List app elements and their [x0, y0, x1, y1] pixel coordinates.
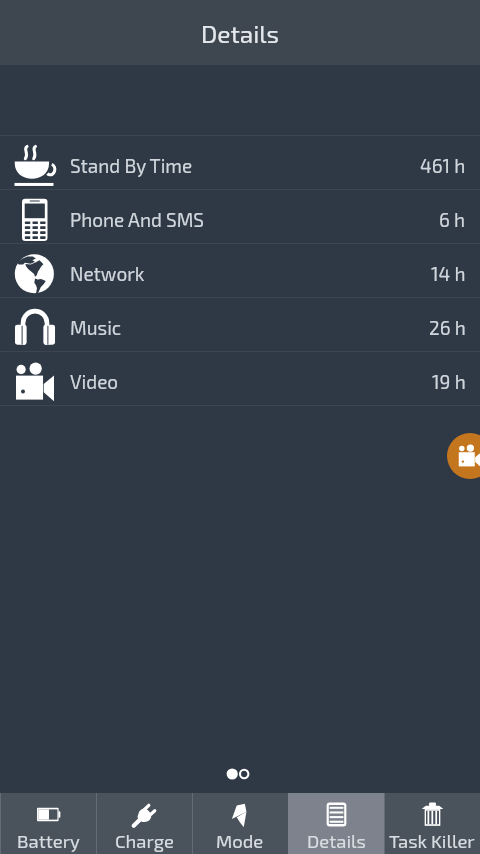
button[interactable]: Video recording: [447, 433, 480, 479]
staticText: 19 h: [432, 370, 466, 393]
button[interactable]: Task Killer: [384, 793, 480, 854]
staticText: Network: [70, 262, 145, 285]
staticText: 461 h: [420, 154, 466, 177]
button[interactable]: Music: [0, 298, 480, 351]
staticText: 26 h: [429, 316, 466, 339]
staticText: 14 h: [431, 262, 466, 285]
staticText: Stand By Time: [70, 154, 193, 177]
staticText: Music: [70, 316, 122, 339]
staticText: Video: [70, 370, 119, 393]
staticText: Battery: [17, 830, 80, 852]
staticText: Details: [307, 830, 366, 852]
staticText: Mode: [216, 830, 264, 852]
button[interactable]: Battery: [0, 793, 96, 854]
button[interactable]: Network: [0, 244, 480, 297]
button[interactable]: Video: [0, 352, 480, 405]
staticText: Details: [201, 19, 280, 48]
staticText: 6 h: [439, 208, 466, 231]
staticText: Charge: [115, 830, 174, 852]
button[interactable]: Charge: [96, 793, 192, 854]
button[interactable]: Stand By Time: [0, 136, 480, 189]
staticText: Task Killer: [389, 830, 475, 852]
staticText: Phone And SMS: [70, 208, 205, 231]
button[interactable]: Mode: [192, 793, 288, 854]
button[interactable]: Phone And SMS: [0, 190, 480, 243]
button[interactable]: Details: [288, 793, 384, 854]
